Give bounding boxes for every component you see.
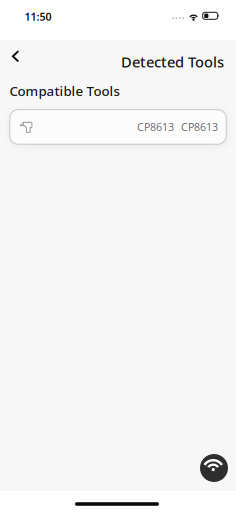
staticText: Compatible Tools (10, 82, 120, 100)
button[interactable]: Connect (200, 454, 228, 482)
staticText: 11:50 (24, 9, 51, 24)
staticText: CP8613 (137, 120, 174, 134)
staticText: Detected Tools (121, 52, 224, 71)
button[interactable]: CP8613 (10, 110, 226, 144)
button[interactable]: Back (0, 49, 34, 73)
staticText: CP8613 (181, 120, 218, 134)
